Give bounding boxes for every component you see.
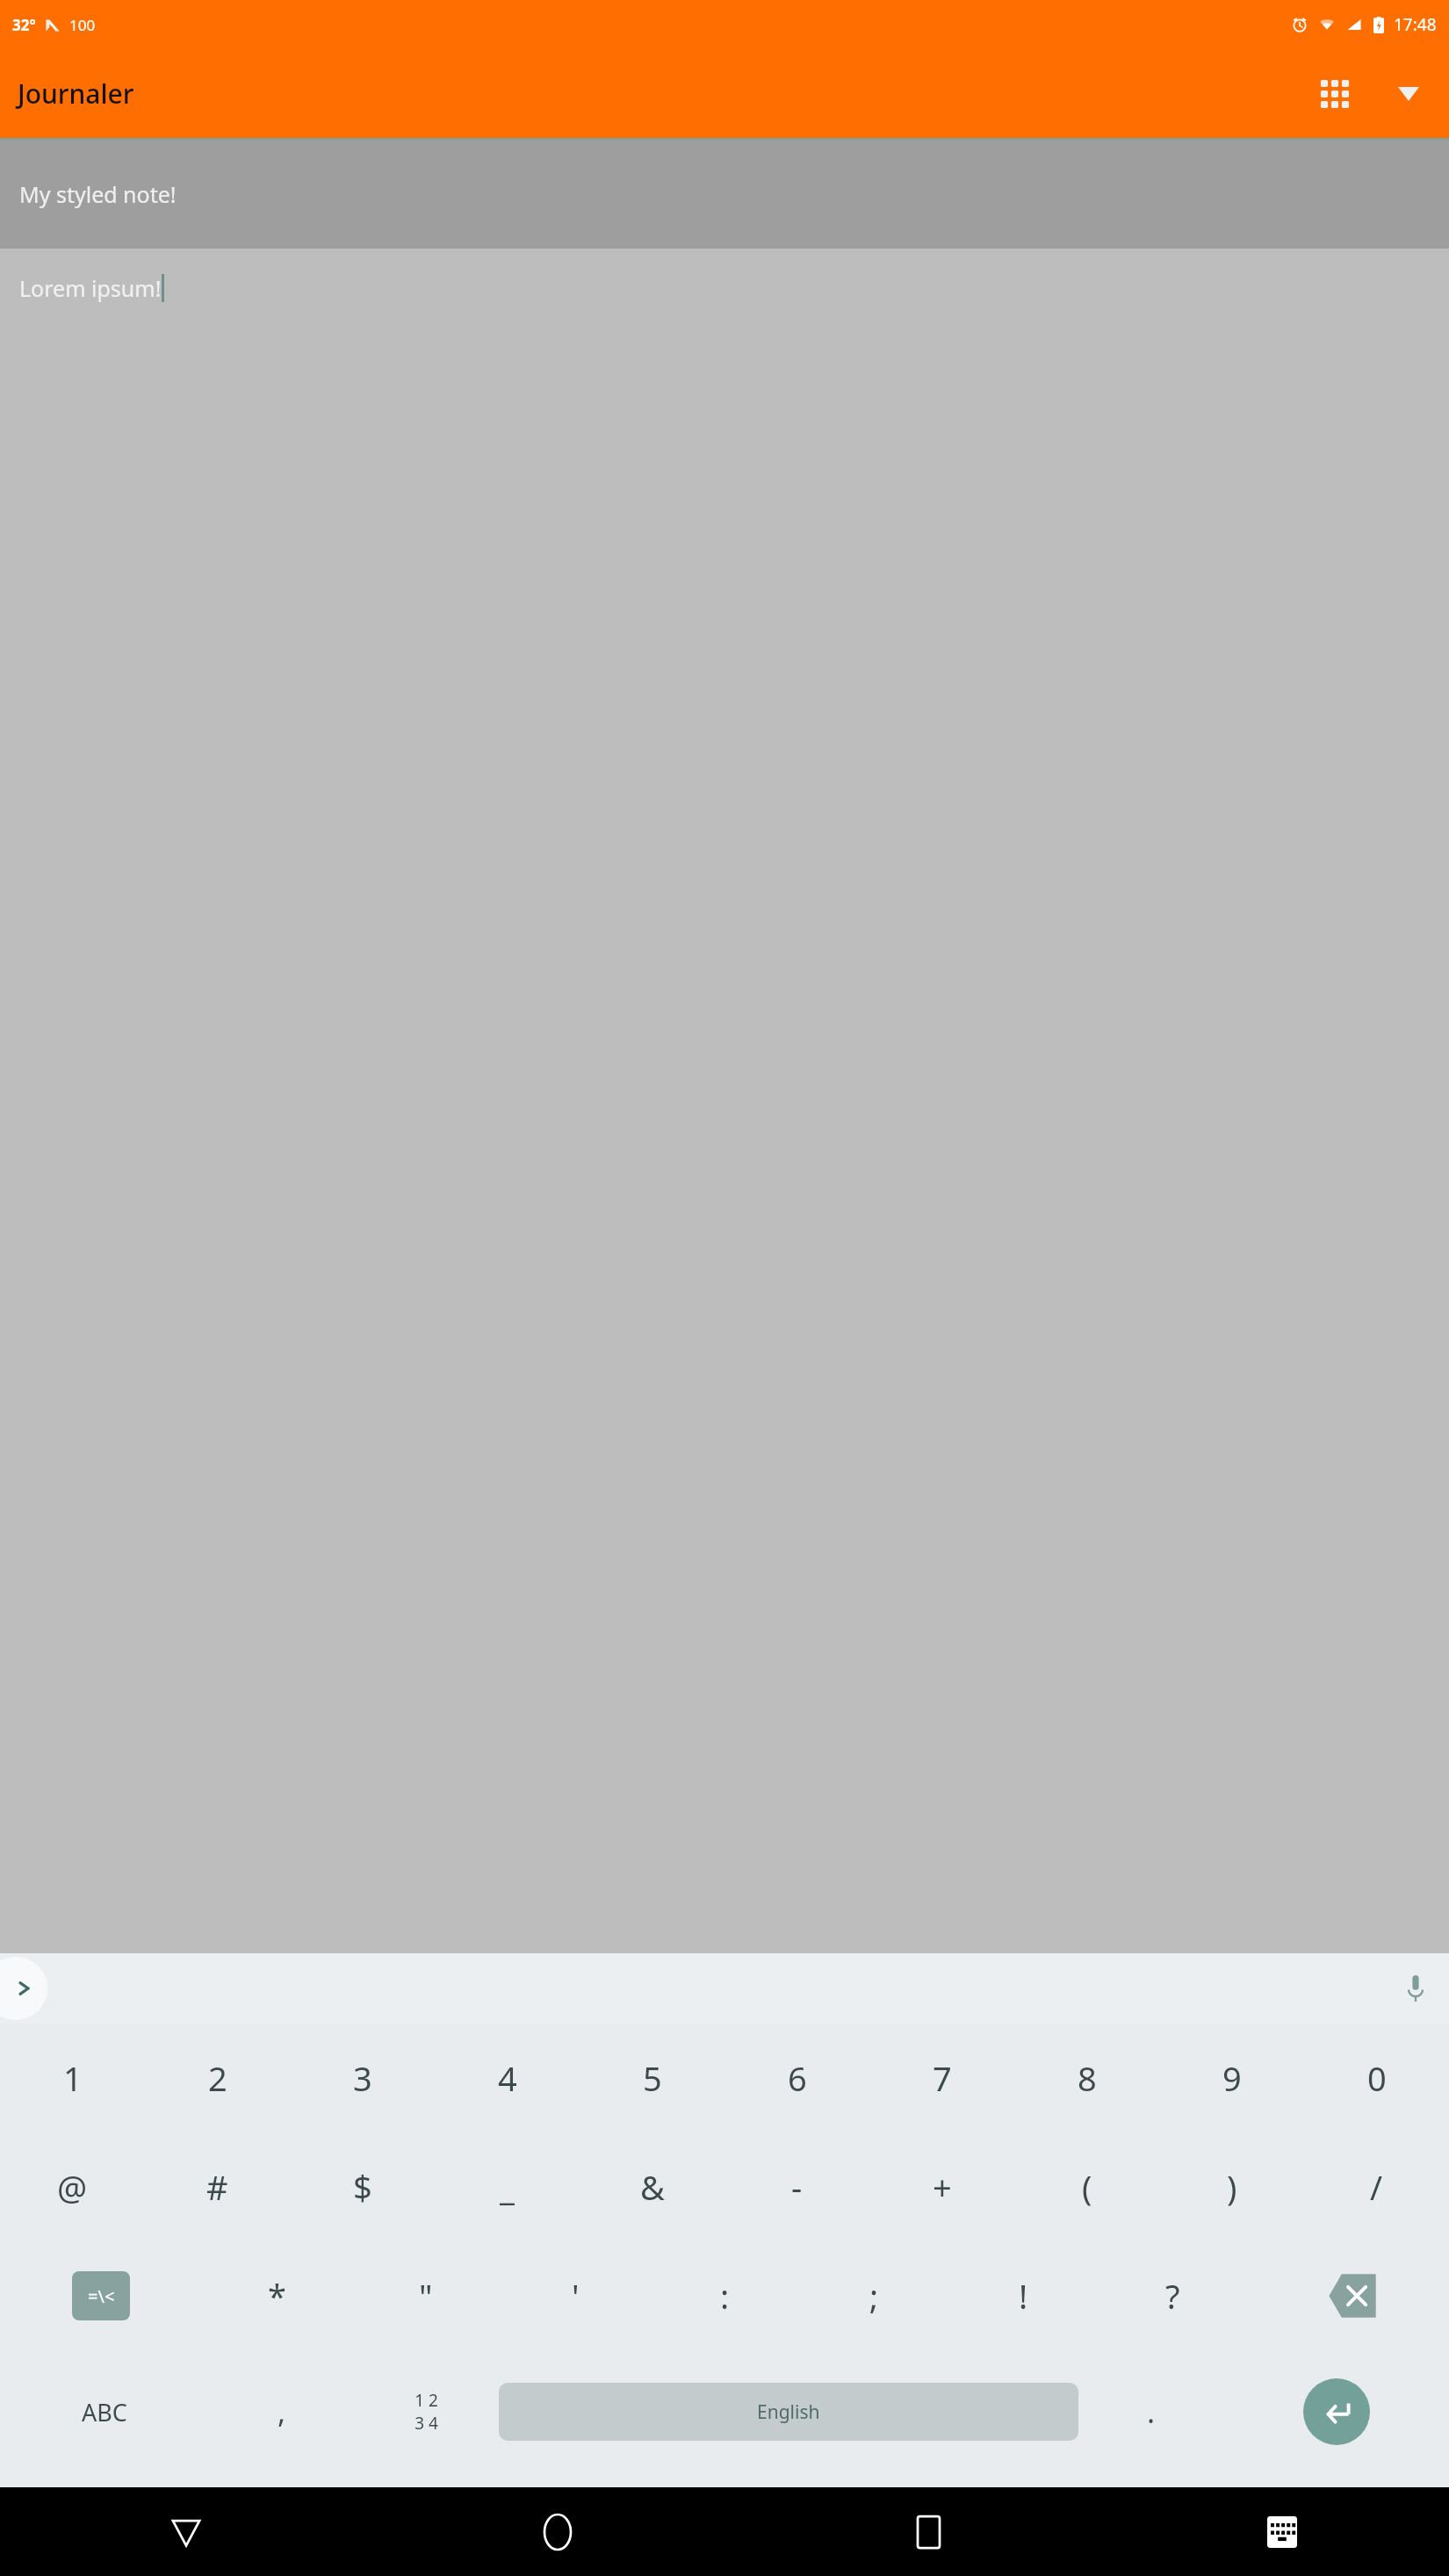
- staticText: 1 2: [415, 2389, 438, 2412]
- staticText: :: [720, 2273, 730, 2319]
- button[interactable]: Backspace: [1247, 2241, 1449, 2350]
- button[interactable]: $: [290, 2132, 435, 2241]
- staticText: 100: [69, 15, 96, 35]
- button[interactable]: @: [0, 2132, 145, 2241]
- staticText: 0: [1367, 2055, 1387, 2101]
- button[interactable]: Symbols: [0, 2241, 202, 2350]
- button[interactable]: ,: [209, 2350, 354, 2473]
- staticText: 4: [498, 2055, 517, 2101]
- staticText: 3 4: [415, 2412, 438, 2435]
- staticText: =\<: [88, 2284, 115, 2308]
- button[interactable]: 7: [869, 2024, 1014, 2132]
- staticText: *: [268, 2273, 286, 2319]
- button[interactable]: 9: [1159, 2024, 1304, 2132]
- staticText: 9: [1222, 2055, 1242, 2101]
- button[interactable]: #: [145, 2132, 290, 2241]
- button[interactable]: _: [435, 2132, 580, 2241]
- button[interactable]: 1: [0, 2024, 145, 2132]
- staticText: ': [572, 2273, 580, 2319]
- staticText: /: [1370, 2164, 1383, 2210]
- staticText: Journaler: [18, 76, 134, 112]
- staticText: 5: [643, 2055, 662, 2101]
- button[interactable]: Voice input: [1382, 1955, 1449, 2022]
- button[interactable]: 3: [290, 2024, 435, 2132]
- button[interactable]: Home: [371, 2487, 743, 2576]
- button[interactable]: ): [1159, 2132, 1304, 2241]
- staticText: 1: [63, 2055, 83, 2101]
- button[interactable]: 0: [1304, 2024, 1449, 2132]
- button[interactable]: 8: [1014, 2024, 1159, 2132]
- staticText: English: [757, 2399, 820, 2425]
- button[interactable]: 4: [435, 2024, 580, 2132]
- button[interactable]: More options: [1372, 57, 1445, 131]
- staticText: 32°: [12, 15, 36, 35]
- staticText: @: [57, 2164, 88, 2210]
- staticText: ;: [869, 2273, 879, 2319]
- button[interactable]: ': [501, 2241, 650, 2350]
- button[interactable]: ": [351, 2241, 501, 2350]
- staticText: 7: [933, 2055, 952, 2101]
- staticText: _: [500, 2164, 515, 2210]
- button[interactable]: ABC: [0, 2350, 209, 2473]
- staticText: -: [791, 2164, 803, 2210]
- staticText: My styled note!: [19, 179, 177, 209]
- staticText: +: [933, 2164, 952, 2210]
- button[interactable]: Recent apps: [743, 2487, 1114, 2576]
- button[interactable]: (: [1014, 2132, 1159, 2241]
- button[interactable]: ;: [799, 2241, 948, 2350]
- staticText: &: [640, 2164, 665, 2210]
- staticText: ): [1227, 2164, 1237, 2210]
- staticText: .: [1147, 2392, 1156, 2432]
- button[interactable]: My styled note!: [0, 140, 1449, 249]
- staticText: $: [353, 2164, 372, 2210]
- button[interactable]: English: [499, 2350, 1078, 2473]
- button[interactable]: Numbers: [354, 2350, 499, 2473]
- staticText: 2: [208, 2055, 227, 2101]
- staticText: (: [1082, 2164, 1092, 2210]
- button[interactable]: -: [724, 2132, 869, 2241]
- staticText: 3: [353, 2055, 372, 2101]
- button[interactable]: *: [202, 2241, 351, 2350]
- button[interactable]: &: [580, 2132, 724, 2241]
- button[interactable]: :: [650, 2241, 799, 2350]
- staticText: #: [206, 2164, 228, 2210]
- button[interactable]: ?: [1098, 2241, 1247, 2350]
- button[interactable]: !: [948, 2241, 1098, 2350]
- staticText: ABC: [82, 2396, 127, 2428]
- staticText: Lorem ipsum!: [19, 273, 162, 303]
- staticText: !: [1019, 2273, 1028, 2319]
- button[interactable]: .: [1078, 2350, 1223, 2473]
- staticText: ": [419, 2273, 433, 2319]
- button[interactable]: 6: [724, 2024, 869, 2132]
- button[interactable]: Enter: [1223, 2350, 1449, 2473]
- button[interactable]: /: [1304, 2132, 1449, 2241]
- button[interactable]: 5: [580, 2024, 724, 2132]
- button[interactable]: Apps grid: [1298, 57, 1372, 131]
- staticText: 17:48: [1394, 13, 1437, 36]
- button[interactable]: +: [869, 2132, 1014, 2241]
- button[interactable]: Back: [0, 2487, 371, 2576]
- staticText: ?: [1165, 2273, 1180, 2319]
- button[interactable]: Switch keyboard: [1114, 2487, 1449, 2576]
- staticText: 8: [1078, 2055, 1097, 2101]
- button[interactable]: Expand suggestions: [0, 1957, 47, 2020]
- staticText: 6: [788, 2055, 807, 2101]
- staticText: ,: [278, 2392, 286, 2432]
- button[interactable]: 2: [145, 2024, 290, 2132]
